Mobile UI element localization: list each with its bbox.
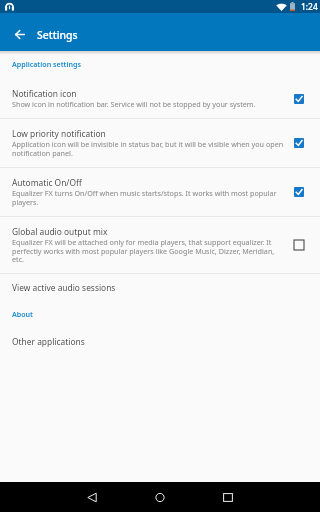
button[interactable]: Back [77, 482, 107, 512]
staticText: Equalizer FX will be attached only for m… [12, 237, 286, 264]
button[interactable]: Other applications [0, 328, 320, 357]
staticText: About [12, 309, 33, 319]
button[interactable]: Global audio output mix [0, 217, 320, 273]
button[interactable]: Unchecked [294, 240, 304, 250]
staticText: Automatic On/Off [12, 177, 82, 188]
staticText: Notification icon [12, 88, 77, 99]
button[interactable]: View active audio sessions [0, 274, 320, 303]
staticText: Low priority notification [12, 128, 106, 139]
staticText: Other applications [12, 336, 85, 347]
staticText: Global audio output mix [12, 226, 108, 237]
staticText: Settings [37, 28, 78, 42]
button[interactable]: Home [145, 482, 175, 512]
button[interactable]: Back [6, 20, 34, 48]
button[interactable]: Checked [294, 94, 304, 104]
staticText: 1:24 [301, 1, 318, 12]
staticText: Application settings [12, 59, 81, 69]
staticText: Show icon in notification bar. Service w… [12, 99, 256, 109]
button[interactable]: Checked [294, 187, 304, 197]
button[interactable]: Checked [294, 138, 304, 148]
staticText: View active audio sessions [12, 282, 116, 293]
staticText: Application icon will be invisible in st… [12, 139, 286, 158]
staticText: Equalizer FX turns On/Off when music sta… [12, 188, 286, 207]
button[interactable]: Automatic On/Off [0, 168, 320, 216]
button[interactable]: Low priority notification [0, 119, 320, 167]
button[interactable]: Notification icon [0, 79, 320, 118]
button[interactable]: Recents [213, 482, 243, 512]
